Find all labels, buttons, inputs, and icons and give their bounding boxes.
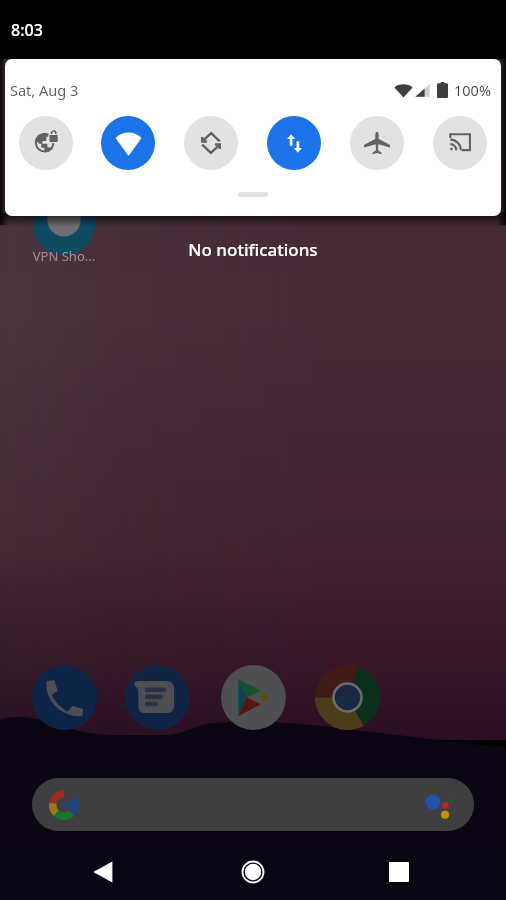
button[interactable]: Recents: [356, 843, 442, 900]
button[interactable]: Mobile data: [267, 116, 321, 170]
staticText: VPN Sho...: [24, 247, 104, 265]
button[interactable]: Back: [63, 843, 149, 900]
button[interactable]: Phone: [32, 665, 97, 730]
button[interactable]: [32, 778, 474, 831]
button[interactable]: Cast: [433, 116, 487, 170]
button[interactable]: Messages: [125, 665, 190, 730]
button[interactable]: Chrome: [315, 665, 380, 730]
button[interactable]: Auto rotate: [184, 116, 238, 170]
button[interactable]: Airplane mode: [350, 116, 404, 170]
button[interactable]: Play Store: [221, 665, 286, 730]
button[interactable]: VPN: [19, 116, 73, 170]
button[interactable]: Wi-Fi: [101, 116, 155, 170]
staticText: 100%: [454, 80, 491, 100]
staticText: Sat, Aug 3: [10, 80, 79, 100]
staticText: 8:03: [11, 19, 43, 41]
staticText: No notifications: [0, 238, 506, 261]
button[interactable]: Home: [210, 843, 296, 900]
